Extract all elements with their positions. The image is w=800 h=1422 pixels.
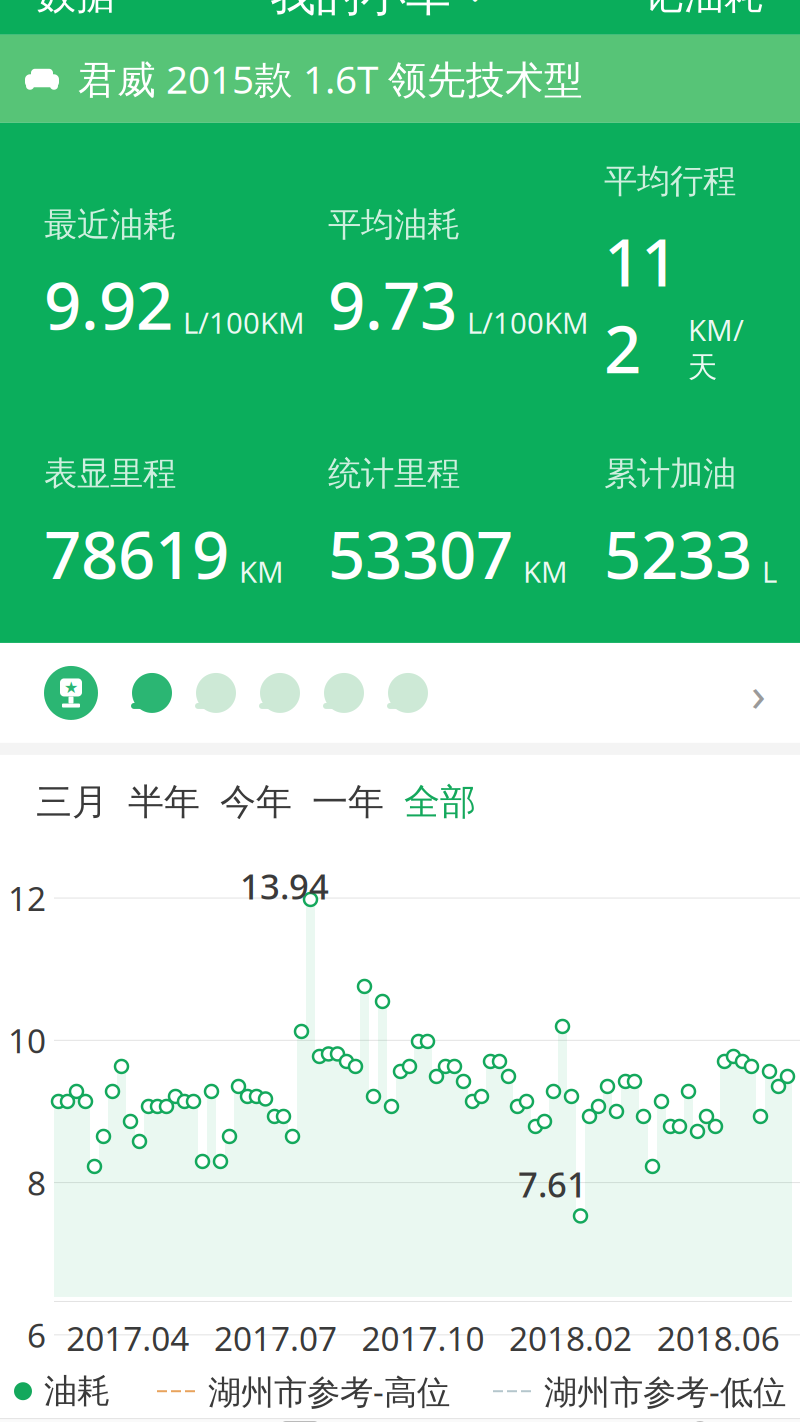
button[interactable]: 全部 — [394, 773, 486, 831]
staticText: 表显里程 — [44, 453, 176, 494]
staticText: 2018.06 — [657, 1316, 780, 1360]
staticText: 8 — [27, 1160, 46, 1205]
staticText: 9.73 — [328, 261, 457, 348]
staticText: ★ — [64, 678, 78, 697]
staticText: 最近油耗 — [44, 204, 176, 245]
staticText: 112 — [604, 218, 678, 391]
staticText: 统计里程 — [328, 453, 460, 494]
staticText: 2017.04 — [66, 1316, 189, 1360]
staticText: 12 — [8, 876, 46, 920]
staticText: 数据 — [36, 0, 116, 19]
button[interactable]: 今年 — [210, 773, 302, 831]
staticText: 今年 — [220, 780, 292, 824]
button[interactable]: 费用 — [200, 1419, 400, 1422]
staticText: 湖州市参考-高位 — [208, 1369, 450, 1413]
staticText: 5233 — [604, 510, 752, 597]
button[interactable]: 记油耗 — [622, 0, 786, 35]
button[interactable]: 三月 — [26, 773, 118, 831]
staticText: 13.94 — [240, 863, 329, 909]
button[interactable]: 我的小车 — [270, 0, 489, 35]
staticText: 平均行程 — [604, 161, 736, 202]
staticText: 记油耗 — [644, 0, 764, 19]
staticText: 平均油耗 — [328, 204, 460, 245]
staticText: 一年 — [312, 780, 384, 824]
staticText: L — [762, 552, 777, 591]
staticText: 2017.10 — [361, 1316, 484, 1360]
staticText: 6 — [27, 1313, 46, 1357]
button[interactable]: 君威 2015款 1.6T 领先技术型 — [0, 35, 800, 123]
staticText: 我的小车 — [270, 0, 450, 23]
staticText: 2018.02 — [509, 1316, 632, 1360]
staticText: KM/天 — [688, 310, 744, 385]
staticText: 全部 — [404, 780, 476, 824]
staticText: 君威 2015款 1.6T 领先技术型 — [78, 53, 583, 104]
staticText: 油耗 — [44, 1371, 110, 1412]
button[interactable]: 我的 — [600, 1419, 800, 1422]
staticText: 湖州市参考-低位 — [544, 1369, 786, 1413]
staticText: 累计加油 — [604, 453, 736, 494]
staticText: 三月 — [36, 780, 108, 824]
staticText: 2017.07 — [214, 1316, 337, 1360]
staticText: 半年 — [128, 780, 200, 824]
staticText: L/100KM — [183, 303, 305, 342]
button[interactable]: ★ — [0, 643, 800, 743]
staticText: ⌄ — [460, 0, 489, 9]
staticText: 53307 — [328, 510, 513, 597]
button[interactable]: 数据 — [14, 0, 138, 35]
staticText: › — [751, 661, 766, 725]
staticText: 10 — [8, 1018, 46, 1062]
staticText: KM — [239, 552, 284, 591]
button[interactable]: 一年 — [302, 773, 394, 831]
staticText: 78619 — [44, 510, 229, 597]
staticText: 9.92 — [44, 261, 173, 348]
staticText: L/100KM — [467, 303, 589, 342]
staticText: 7.61 — [518, 1161, 587, 1207]
staticText: KM — [523, 552, 568, 591]
button[interactable]: 半年 — [118, 773, 210, 831]
